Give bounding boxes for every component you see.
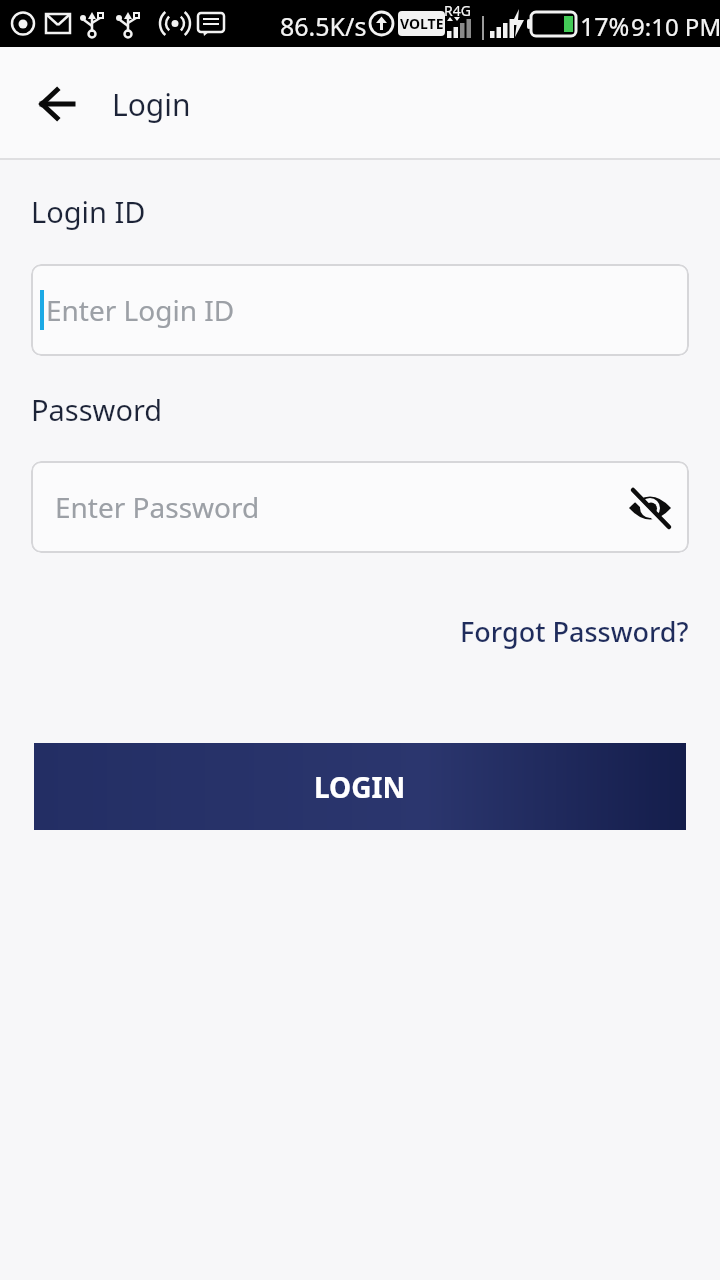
button[interactable]: Forgot Password?	[460, 613, 689, 650]
staticText: R4G	[444, 1, 471, 20]
button[interactable]	[625, 482, 675, 532]
staticText: 9:10 PM	[631, 10, 720, 43]
staticText: Enter Password	[55, 488, 260, 526]
staticText: Enter Login ID	[46, 291, 235, 329]
staticText: LOGIN	[314, 768, 406, 806]
staticText: 17%	[580, 9, 630, 43]
button[interactable]: Enter Login ID	[31, 264, 689, 356]
staticText: Login ID	[31, 192, 146, 231]
staticText: Password	[31, 390, 163, 429]
button[interactable]: LOGIN	[34, 743, 686, 830]
button[interactable]	[26, 72, 90, 136]
staticText: VOLTE	[400, 14, 444, 33]
staticText: Login	[112, 84, 191, 125]
staticText: 86.5K/s	[280, 9, 367, 43]
button[interactable]: Enter Password	[31, 461, 689, 553]
